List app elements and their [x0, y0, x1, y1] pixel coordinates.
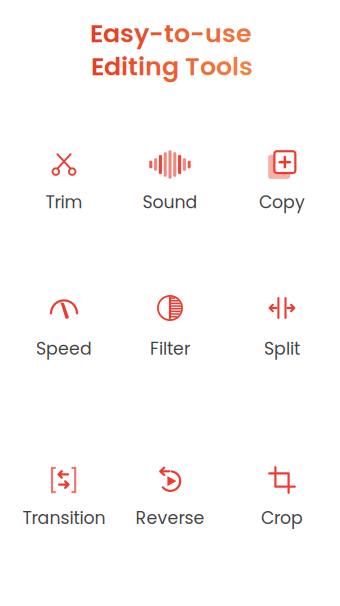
staticText: o [174, 16, 190, 51]
staticText: s [120, 16, 134, 51]
staticText: n [145, 49, 162, 84]
staticText: - [149, 16, 164, 51]
button[interactable]: Copy [228, 132, 336, 198]
staticText: e [236, 16, 252, 51]
staticText: i [121, 49, 128, 84]
staticText: t [128, 49, 138, 84]
staticText: - [190, 16, 205, 51]
staticText: o [200, 49, 216, 84]
staticText: Speed [36, 336, 92, 361]
staticText: Copy [259, 190, 305, 214]
staticText: Crop [261, 506, 303, 530]
button[interactable]: Trim [10, 132, 118, 198]
staticText: E [91, 49, 104, 84]
staticText: t [164, 16, 174, 51]
staticText: s [239, 49, 253, 84]
button[interactable]: Sound [116, 132, 224, 198]
staticText: u [205, 16, 222, 51]
staticText: E [90, 16, 103, 51]
button[interactable]: Reverse [116, 448, 224, 514]
button[interactable]: Crop [228, 448, 336, 514]
button[interactable]: Transition [10, 448, 118, 514]
staticText: Split [264, 336, 300, 361]
staticText: Sound [142, 190, 197, 214]
staticText: Trim [45, 190, 82, 214]
staticText: T [185, 49, 200, 84]
button[interactable]: Split [228, 276, 336, 342]
staticText: Reverse [135, 506, 204, 530]
staticText: s [222, 16, 236, 51]
staticText: g [162, 49, 179, 84]
staticText: i [138, 49, 145, 84]
staticText: Filter [150, 336, 190, 361]
staticText: o [216, 49, 232, 84]
button[interactable]: Speed [10, 276, 118, 342]
staticText: y [134, 16, 149, 51]
staticText: a [103, 16, 120, 51]
staticText: d [104, 49, 121, 84]
staticText: l [232, 49, 239, 84]
staticText: Transition [22, 506, 105, 530]
button[interactable]: Filter [116, 276, 224, 342]
